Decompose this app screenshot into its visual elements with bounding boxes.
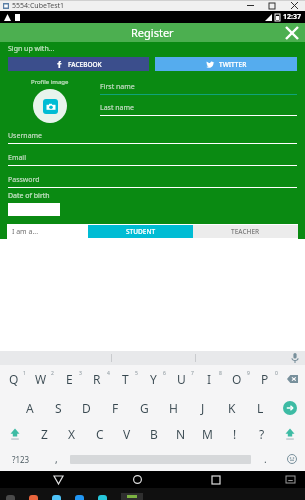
button[interactable]: FACEBOOK bbox=[8, 57, 149, 71]
staticText: U bbox=[177, 371, 186, 387]
staticText: 5554:CubeTest1 bbox=[12, 1, 65, 11]
staticText: P bbox=[261, 371, 269, 387]
staticText: S bbox=[55, 400, 62, 416]
button[interactable]: Backspace bbox=[279, 367, 305, 391]
button[interactable]: Hide keyboard bbox=[275, 471, 305, 488]
button[interactable]: Close bbox=[279, 23, 305, 42]
staticText: TEACHER bbox=[231, 227, 260, 236]
button[interactable]: . bbox=[251, 449, 279, 469]
staticText: 6 bbox=[163, 370, 166, 377]
button[interactable]: Y bbox=[139, 367, 167, 391]
staticText: ?123 bbox=[12, 454, 30, 465]
staticText: Date of birth bbox=[8, 191, 50, 201]
staticText: T bbox=[122, 371, 129, 387]
button[interactable]: D bbox=[72, 397, 101, 419]
staticText: FACEBOOK bbox=[68, 60, 102, 69]
button[interactable]: Q bbox=[0, 367, 27, 391]
button[interactable]: TEACHER bbox=[193, 225, 298, 238]
button[interactable]: M bbox=[194, 423, 221, 445]
staticText: 12:37 bbox=[283, 12, 301, 22]
staticText: 3 bbox=[79, 370, 82, 377]
button[interactable]: L bbox=[246, 397, 275, 419]
staticText: 0 bbox=[275, 370, 278, 377]
staticText: Y bbox=[150, 371, 157, 387]
button[interactable]: Next bbox=[275, 397, 305, 419]
staticText: R bbox=[93, 371, 101, 387]
button[interactable]: U bbox=[167, 367, 195, 391]
button[interactable]: A bbox=[16, 397, 44, 419]
staticText: F bbox=[112, 400, 119, 416]
staticText: Z bbox=[41, 426, 48, 442]
staticText: Username bbox=[8, 131, 43, 141]
staticText: 4 bbox=[107, 370, 110, 377]
staticText: STUDENT bbox=[126, 227, 156, 236]
button[interactable]: R bbox=[83, 367, 111, 391]
button[interactable]: Home bbox=[117, 471, 157, 488]
button[interactable]: Shift bbox=[0, 423, 30, 445]
button[interactable]: Back bbox=[38, 471, 78, 488]
button[interactable]: TWITTER bbox=[155, 57, 297, 71]
button[interactable]: ?123 bbox=[0, 449, 42, 469]
button[interactable]: W bbox=[27, 367, 55, 391]
staticText: Password bbox=[8, 175, 40, 185]
staticText: I bbox=[207, 371, 212, 387]
staticText: TWITTER bbox=[219, 60, 247, 69]
staticText: V bbox=[123, 426, 131, 442]
button[interactable]: P bbox=[251, 367, 279, 391]
button[interactable]: N bbox=[167, 423, 194, 445]
staticText: 2 bbox=[51, 370, 54, 377]
button[interactable]: E bbox=[55, 367, 83, 391]
button[interactable]: T bbox=[111, 367, 139, 391]
button[interactable]: Shift bbox=[275, 423, 305, 445]
staticText: 1 bbox=[23, 370, 26, 377]
button[interactable]: Voice input bbox=[291, 353, 299, 363]
button[interactable]: , bbox=[42, 449, 70, 469]
button[interactable]: F bbox=[101, 397, 130, 419]
staticText: N bbox=[176, 426, 186, 442]
button[interactable]: S bbox=[44, 397, 72, 419]
button[interactable]: H bbox=[159, 397, 188, 419]
button[interactable]: G bbox=[130, 397, 159, 419]
staticText: M bbox=[202, 426, 213, 442]
staticText: D bbox=[82, 400, 91, 416]
staticText: K bbox=[228, 400, 236, 416]
staticText: G bbox=[140, 400, 149, 416]
button[interactable]: J bbox=[188, 397, 217, 419]
staticText: W bbox=[35, 371, 47, 387]
button[interactable]: C bbox=[86, 423, 113, 445]
button[interactable]: B bbox=[140, 423, 167, 445]
staticText: ? bbox=[259, 426, 265, 442]
staticText: First name bbox=[100, 82, 135, 92]
button[interactable]: O bbox=[223, 367, 251, 391]
staticText: . bbox=[264, 452, 267, 466]
staticText: Email bbox=[8, 153, 26, 163]
staticText: E bbox=[66, 371, 73, 387]
staticText: ! bbox=[233, 426, 237, 442]
staticText: X bbox=[68, 426, 76, 442]
staticText: 8 bbox=[219, 370, 222, 377]
staticText: 9 bbox=[247, 370, 250, 377]
button[interactable]: I bbox=[195, 367, 223, 391]
staticText: H bbox=[169, 400, 178, 416]
button[interactable]: STUDENT bbox=[88, 225, 193, 238]
button[interactable]: Z bbox=[30, 423, 58, 445]
staticText: Profile image bbox=[31, 78, 69, 86]
button[interactable]: Emoji bbox=[279, 449, 305, 469]
staticText: L bbox=[257, 400, 264, 416]
staticText: A bbox=[26, 400, 34, 416]
button[interactable]: X bbox=[58, 423, 86, 445]
button[interactable]: Recents bbox=[196, 471, 236, 488]
staticText: B bbox=[150, 426, 158, 442]
button[interactable]: ! bbox=[221, 423, 248, 445]
button[interactable]: K bbox=[217, 397, 246, 419]
staticText: , bbox=[55, 452, 58, 466]
button[interactable]: Pick profile image bbox=[33, 89, 67, 123]
staticText: Sign up with... bbox=[8, 44, 55, 54]
button[interactable]: V bbox=[113, 423, 140, 445]
staticText: Register bbox=[131, 25, 174, 40]
staticText: Q bbox=[9, 371, 19, 387]
staticText: 7 bbox=[191, 370, 194, 377]
button[interactable]: ? bbox=[248, 423, 275, 445]
